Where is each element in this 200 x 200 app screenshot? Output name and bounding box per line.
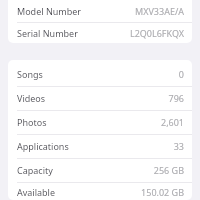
staticText: L2Q0L6FKQX bbox=[129, 27, 184, 39]
staticText: 2,601 bbox=[160, 116, 184, 128]
staticText: 33 bbox=[173, 140, 184, 152]
staticText: Capacity bbox=[17, 164, 53, 176]
staticText: MXV33AE/A bbox=[135, 5, 184, 17]
button[interactable]: Model Number bbox=[8, 0, 192, 21]
button[interactable]: Applications bbox=[8, 135, 192, 157]
button[interactable]: Serial Number bbox=[8, 23, 192, 43]
staticText: Photos bbox=[17, 116, 47, 128]
staticText: 796 bbox=[168, 92, 184, 104]
staticText: 256 GB bbox=[153, 164, 184, 176]
staticText: Videos bbox=[17, 92, 46, 104]
button[interactable]: Photos bbox=[8, 111, 192, 133]
staticText: 150.02 GB bbox=[141, 186, 184, 198]
staticText: Serial Number bbox=[17, 27, 78, 39]
staticText: Songs bbox=[17, 68, 43, 80]
button[interactable]: Available bbox=[8, 183, 192, 200]
staticText: Available bbox=[17, 186, 55, 198]
staticText: Applications bbox=[17, 140, 69, 152]
button[interactable]: Capacity bbox=[8, 159, 192, 181]
button[interactable]: Videos bbox=[8, 87, 192, 109]
button[interactable]: Songs bbox=[8, 63, 192, 85]
staticText: 0 bbox=[178, 68, 184, 80]
staticText: Model Number bbox=[17, 5, 82, 17]
